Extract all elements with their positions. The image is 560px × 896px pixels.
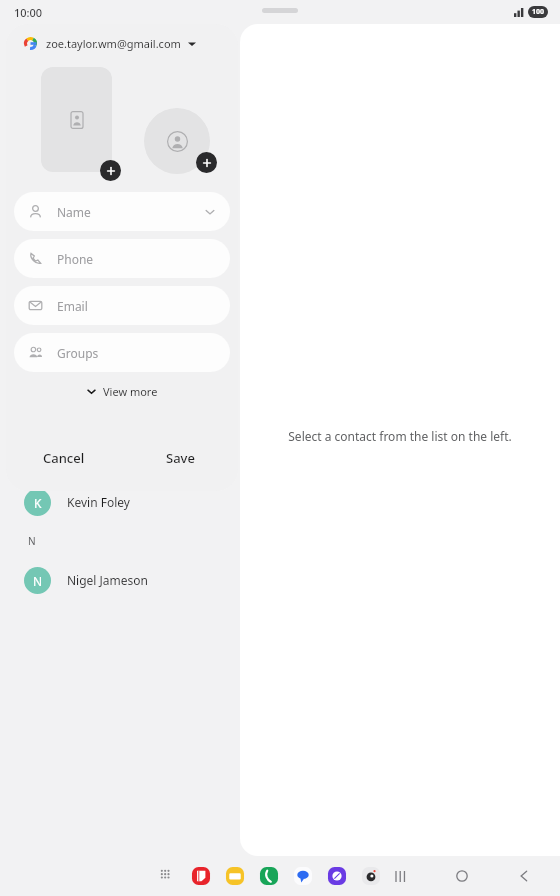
button[interactable]: Email xyxy=(14,286,230,325)
button[interactable]: zoe.taylor.wm@gmail.com xyxy=(6,24,238,57)
button[interactable]: Name xyxy=(14,192,230,231)
staticText: Phone xyxy=(57,251,94,267)
staticText: Kevin Foley xyxy=(67,494,130,510)
button[interactable]: Groups xyxy=(14,333,230,372)
button[interactable]: Camera xyxy=(360,865,382,887)
button[interactable]: Back xyxy=(512,864,536,888)
staticText: Groups xyxy=(57,345,99,361)
button[interactable]: View more xyxy=(6,372,238,410)
button[interactable]: Add avatar picture xyxy=(196,152,217,173)
button[interactable]: All apps xyxy=(156,865,178,887)
button[interactable]: Files xyxy=(224,865,246,887)
staticText: N xyxy=(33,573,43,589)
button[interactable]: Add picture xyxy=(100,160,121,181)
button[interactable]: K xyxy=(0,480,560,524)
staticText: zoe.taylor.wm@gmail.com xyxy=(46,36,181,51)
button[interactable]: Cancel xyxy=(6,443,122,473)
button[interactable]: Save xyxy=(122,443,238,473)
button[interactable]: N xyxy=(0,558,560,602)
staticText: Email xyxy=(57,298,88,314)
button[interactable]: Phone xyxy=(14,239,230,278)
button[interactable]: Notes xyxy=(190,865,212,887)
button[interactable]: Browser xyxy=(326,865,348,887)
staticText: Name xyxy=(57,204,91,220)
staticText: Nigel Jameson xyxy=(67,572,149,588)
staticText: Save xyxy=(166,449,195,467)
button[interactable]: Add avatar xyxy=(144,108,210,174)
button[interactable]: Phone xyxy=(258,865,280,887)
staticText: 100 xyxy=(532,7,545,17)
staticText: N xyxy=(28,534,36,548)
staticText: View more xyxy=(103,384,158,399)
button[interactable]: Home xyxy=(450,864,474,888)
staticText: Select a contact from the list on the le… xyxy=(288,428,512,444)
staticText: K xyxy=(34,495,42,511)
button[interactable]: Add photo xyxy=(41,67,112,172)
staticText: Cancel xyxy=(43,449,85,467)
staticText: 10:00 xyxy=(14,5,43,20)
button[interactable]: Messages xyxy=(292,865,314,887)
button[interactable]: Recents xyxy=(388,864,412,888)
